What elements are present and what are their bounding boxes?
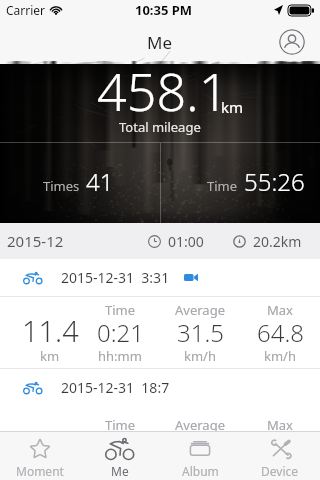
staticText: 31.5: [177, 316, 224, 349]
staticText: Total mileage: [119, 118, 201, 136]
staticText: Max: [267, 301, 293, 319]
staticText: km: [40, 347, 60, 365]
staticText: km/h: [264, 347, 296, 365]
staticText: Time: [105, 416, 136, 434]
staticText: km: [221, 97, 244, 117]
staticText: 458.1: [97, 55, 229, 126]
staticText: Moment: [16, 463, 64, 479]
button[interactable]: Moment: [0, 432, 80, 480]
staticText: 0:21: [97, 316, 144, 349]
staticText: Me: [147, 31, 173, 54]
staticText: Time: [105, 301, 136, 319]
staticText: Time: [207, 177, 238, 195]
staticText: 2015-12: [7, 231, 64, 251]
button[interactable]: Device: [240, 432, 320, 480]
staticText: 11.4: [22, 311, 79, 350]
staticText: 55:26: [244, 165, 305, 198]
staticText: km/h: [184, 347, 216, 365]
button[interactable]: 2015-12-31 3:31: [23, 259, 320, 296]
staticText: 41: [86, 165, 114, 198]
button[interactable]: Profile: [279, 29, 305, 55]
staticText: Average: [175, 416, 225, 434]
button[interactable]: 11.4: [0, 297, 320, 368]
staticText: Device: [261, 463, 299, 479]
staticText: Average: [175, 301, 225, 319]
staticText: 64.8: [257, 316, 304, 349]
staticText: 2015-12-31 3:31: [61, 268, 170, 287]
staticText: Carrier: [6, 2, 46, 18]
staticText: 10:35 PM: [135, 1, 193, 19]
staticText: Album: [182, 463, 219, 479]
staticText: Max: [267, 416, 293, 434]
staticText: 20.2km: [253, 232, 302, 251]
staticText: 2015-12-31 18:7: [61, 378, 170, 397]
button[interactable]: 2015-12-31 18:7: [23, 369, 320, 406]
staticText: Me: [111, 463, 129, 479]
button[interactable]: Me: [80, 432, 160, 480]
button[interactable]: Album: [160, 432, 240, 480]
staticText: hh:mm: [98, 347, 142, 365]
staticText: Times: [43, 177, 80, 195]
staticText: 01:00: [168, 232, 204, 251]
